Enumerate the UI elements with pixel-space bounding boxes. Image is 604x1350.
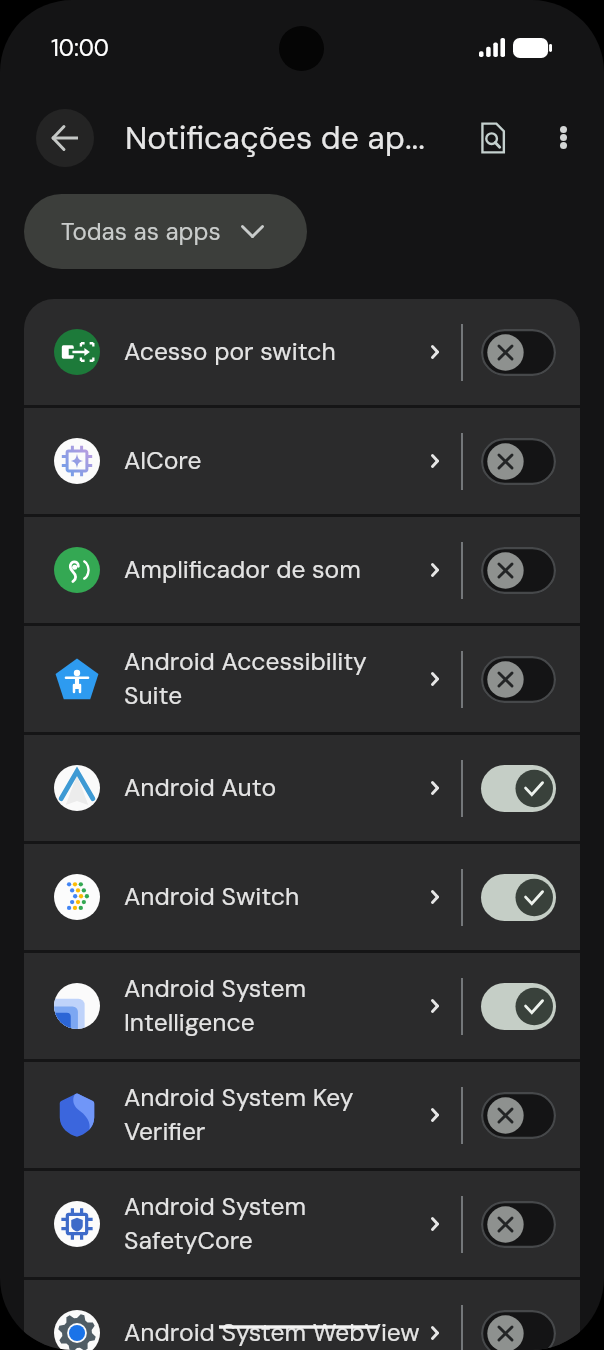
staticText: Android System Intelligence [124,973,375,1039]
button[interactable]: Android Accessibility Suite [24,626,580,732]
button[interactable]: Mais opções [537,111,589,163]
staticText: Android Auto [124,772,375,804]
button[interactable]: Desativado [481,1092,556,1139]
button[interactable]: Android Auto [24,735,580,841]
button[interactable]: Pesquisar na página [467,112,519,164]
button[interactable]: Todas as apps [24,194,307,269]
button[interactable]: AICore [24,408,580,514]
button[interactable]: Desativado [481,656,556,703]
staticText: Android Accessibility Suite [124,646,375,712]
button[interactable]: Ativado [481,874,556,921]
button[interactable]: Desativado [481,1310,556,1350]
button[interactable]: Ativado [481,983,556,1030]
staticText: Android System WebView [124,1317,420,1349]
staticText: Android System SafetyCore [124,1191,375,1257]
button[interactable]: Android System Key Verifier [24,1062,580,1168]
button[interactable]: Desativado [481,438,556,485]
button[interactable]: Desativado [481,1201,556,1248]
staticText: Todas as apps [61,216,221,247]
staticText: 10:00 [51,33,109,63]
staticText: Acesso por switch [124,336,375,368]
staticText: Android System Key Verifier [124,1082,375,1148]
button[interactable]: Desativado [481,329,556,376]
staticText: Android Switch [124,881,375,913]
button[interactable]: Android System Intelligence [24,953,580,1059]
button[interactable]: Amplificador de som [24,517,580,623]
button[interactable]: Android Switch [24,844,580,950]
staticText: Notificações de ap... [125,117,425,159]
button[interactable]: Voltar [36,109,94,167]
button[interactable]: Ativado [481,765,556,812]
button[interactable]: Android System SafetyCore [24,1171,580,1277]
button[interactable]: Android System WebView [24,1280,580,1350]
staticText: Amplificador de som [124,554,375,586]
staticText: AICore [124,445,375,477]
button[interactable]: Acesso por switch [24,299,580,405]
button[interactable]: Desativado [481,547,556,594]
